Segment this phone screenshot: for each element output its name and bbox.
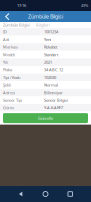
staticText: Y-A-K-AREZ [44,105,63,110]
staticText: 102030 [44,75,56,80]
staticText: 49% [81,3,88,8]
button[interactable]: Back [17,190,25,198]
button[interactable]: Markası [0,43,91,51]
staticText: Zümbüle Bilgisi [28,13,63,20]
button[interactable]: Yılı [0,58,91,66]
staticText: Adresi [3,90,15,95]
button[interactable]: Görev [0,104,91,112]
button[interactable]: Modeli [0,51,91,58]
staticText: Zümbüle Bilgisi [3,22,30,28]
staticText: Güncelle [38,115,53,121]
button[interactable]: Şekli [0,81,91,89]
staticText: Tipi / Kodu [3,75,20,80]
button[interactable]: Tipi / Kodu [0,74,91,81]
staticText: 1001234 [44,29,58,34]
staticText: Adı [3,37,9,42]
staticText: Yeni [44,37,51,42]
button[interactable]: ID [0,28,91,36]
staticText: ID [3,29,7,34]
staticText: Standart [44,52,58,57]
staticText: Normal [44,82,58,88]
staticText: Bilinmiyor [44,90,63,95]
staticText: Görev [3,105,14,110]
staticText: Markası [3,44,18,50]
staticText: 17:16 [17,3,26,8]
staticText: Plaka [3,67,12,72]
staticText: Yılı [3,59,8,65]
staticText: Sensör Bilgisi [44,97,68,103]
staticText: Modeli [3,52,15,57]
button[interactable]: Adresi [0,89,91,96]
staticText: Sensör Tipi [3,97,22,103]
button[interactable]: Sensör Tipi [0,96,91,104]
staticText: Rekabet [44,44,57,50]
button[interactable]: Back [0,11,14,22]
button[interactable]: Recents [66,190,74,198]
staticText: 34 ABC 12 [44,67,63,72]
button[interactable]: Home [41,190,49,198]
staticText: Bilgileri [36,22,50,28]
button[interactable]: Adı [0,36,91,43]
button[interactable]: Güncelle [3,113,88,123]
staticText: Şekli [3,82,11,88]
staticText: 2021 [44,59,52,65]
button[interactable]: Plaka [0,66,91,74]
